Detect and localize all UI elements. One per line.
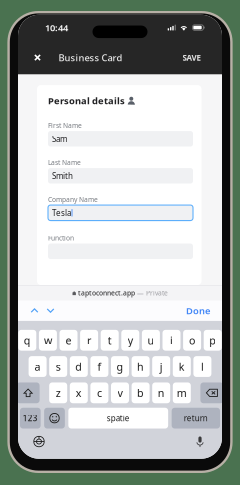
staticText: d [75, 359, 82, 374]
button[interactable]: j [152, 356, 170, 377]
button[interactable]: spatie [68, 408, 168, 429]
button[interactable]: v [111, 382, 129, 403]
button[interactable]: q [18, 330, 36, 351]
staticText: return [184, 413, 208, 423]
staticText: z [56, 386, 61, 400]
staticText: Function [48, 234, 74, 242]
staticText: o [189, 333, 195, 347]
button[interactable]: l [193, 356, 211, 377]
staticText: Business Card [58, 51, 122, 64]
staticText: y [128, 333, 133, 347]
staticText: k [179, 359, 185, 374]
button[interactable]: SAVE [175, 41, 208, 75]
button[interactable]: Emoji [44, 408, 65, 429]
staticText: t [108, 333, 112, 347]
staticText: c [97, 386, 102, 400]
button[interactable]: Delete [200, 382, 223, 403]
staticText: Smith [52, 170, 73, 181]
button[interactable]: s [49, 356, 67, 377]
staticText: n [158, 386, 165, 400]
button[interactable]: u [142, 330, 160, 351]
button[interactable]: 123 [20, 408, 41, 429]
button[interactable]: w [39, 330, 57, 351]
button[interactable]: f [90, 356, 108, 377]
button[interactable]: Shift [17, 382, 40, 403]
button[interactable]: t [101, 330, 119, 351]
staticText: b [137, 386, 144, 400]
button[interactable]: e [59, 330, 77, 351]
button[interactable]: h [132, 356, 150, 377]
staticText: Tesla [52, 207, 71, 218]
button[interactable]: Done [186, 302, 210, 320]
button[interactable]: Tesla [48, 205, 193, 221]
staticText: Personal details [48, 95, 125, 107]
staticText: — Private [137, 288, 168, 297]
button[interactable]: Smith [48, 168, 193, 184]
staticText: Company Name [48, 195, 98, 204]
staticText: r [87, 333, 91, 347]
staticText: f [97, 359, 101, 374]
staticText: m [177, 386, 187, 400]
button[interactable]: a [29, 356, 47, 377]
button[interactable]: Previous field [27, 302, 42, 320]
button[interactable]: Change keyboard [31, 433, 47, 449]
button[interactable]: i [162, 330, 180, 351]
staticText: Sam [52, 133, 67, 144]
button[interactable]: y [121, 330, 139, 351]
staticText: Last Name [48, 158, 81, 167]
button[interactable]: x [70, 382, 88, 403]
staticText: i [170, 333, 173, 347]
staticText: g [116, 359, 123, 374]
button[interactable]: p [204, 330, 222, 351]
staticText: v [117, 386, 122, 400]
staticText: 123 [23, 413, 38, 423]
staticText: h [137, 359, 144, 374]
button[interactable]: g [111, 356, 129, 377]
staticText: s [56, 359, 61, 374]
button[interactable]: Close [25, 41, 49, 75]
staticText: SAVE [182, 52, 200, 63]
staticText: spatie [107, 413, 130, 423]
button[interactable]: d [70, 356, 88, 377]
staticText: Done [186, 304, 210, 317]
staticText: j [160, 359, 163, 374]
button[interactable]: Dictate [192, 433, 208, 449]
button[interactable]: Sam [48, 131, 193, 147]
staticText: u [147, 333, 154, 347]
staticText: First Name [48, 121, 82, 130]
button[interactable]: z [49, 382, 67, 403]
staticText: 10:44 [45, 21, 68, 34]
button[interactable]: Next field [43, 302, 58, 320]
staticText: q [24, 333, 31, 347]
button[interactable]: return [172, 408, 220, 429]
staticText: p [209, 333, 216, 347]
button[interactable]: k [173, 356, 191, 377]
button[interactable]: b [132, 382, 150, 403]
staticText: taptoconnect.app [78, 288, 135, 297]
button[interactable]: r [80, 330, 98, 351]
staticText: l [201, 359, 204, 374]
staticText: e [65, 333, 71, 347]
button[interactable]: m [173, 382, 191, 403]
button[interactable]: n [152, 382, 170, 403]
staticText: a [35, 359, 41, 374]
button[interactable]: c [90, 382, 108, 403]
staticText: x [76, 386, 82, 400]
staticText: w [44, 333, 52, 347]
button[interactable]: o [183, 330, 201, 351]
